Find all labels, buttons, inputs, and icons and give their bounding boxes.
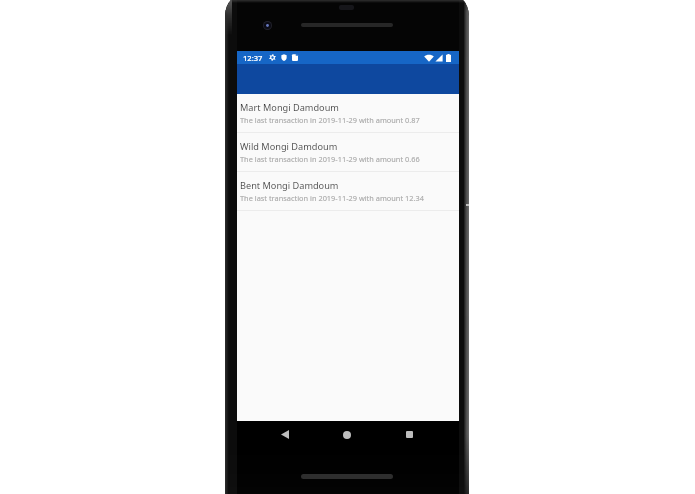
staticText: Bent Mongi Damdoum (240, 179, 339, 192)
button[interactable]: Back (267, 421, 303, 448)
button[interactable]: Mart Mongi Damdoum (237, 94, 459, 133)
staticText: The last transaction in 2019-11-29 with … (240, 154, 420, 164)
staticText: The last transaction in 2019-11-29 with … (240, 115, 420, 125)
staticText: Wild Mongi Damdoum (240, 140, 338, 153)
staticText: 12:37 (243, 53, 263, 63)
staticText: Mart Mongi Damdoum (240, 101, 339, 114)
button[interactable]: Bent Mongi Damdoum (237, 172, 459, 211)
button[interactable]: Home (329, 421, 365, 448)
button[interactable]: Recent apps (391, 421, 427, 448)
staticText: The last transaction in 2019-11-29 with … (240, 193, 424, 203)
button[interactable]: Wild Mongi Damdoum (237, 133, 459, 172)
